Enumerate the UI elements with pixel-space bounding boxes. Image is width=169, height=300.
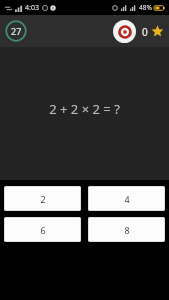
staticText: 48% (139, 3, 152, 12)
staticText: 4:03 (25, 3, 39, 13)
staticText: 6 (40, 224, 46, 236)
button[interactable]: 6 (4, 217, 81, 242)
button[interactable]: 2 (4, 186, 81, 211)
staticText: 27 (11, 25, 22, 37)
button[interactable]: 8 (88, 217, 165, 242)
button[interactable]: Stars (151, 25, 164, 38)
staticText: 8 (124, 224, 130, 236)
button[interactable]: 4 (88, 186, 165, 211)
staticText: 2 (40, 193, 46, 205)
staticText: 4 (124, 193, 130, 205)
staticText: 2 + 2 × 2 = ? (49, 100, 120, 118)
staticText: 0 (142, 25, 148, 39)
button[interactable]: Record (113, 20, 136, 43)
button[interactable]: Score 27 (5, 20, 27, 42)
